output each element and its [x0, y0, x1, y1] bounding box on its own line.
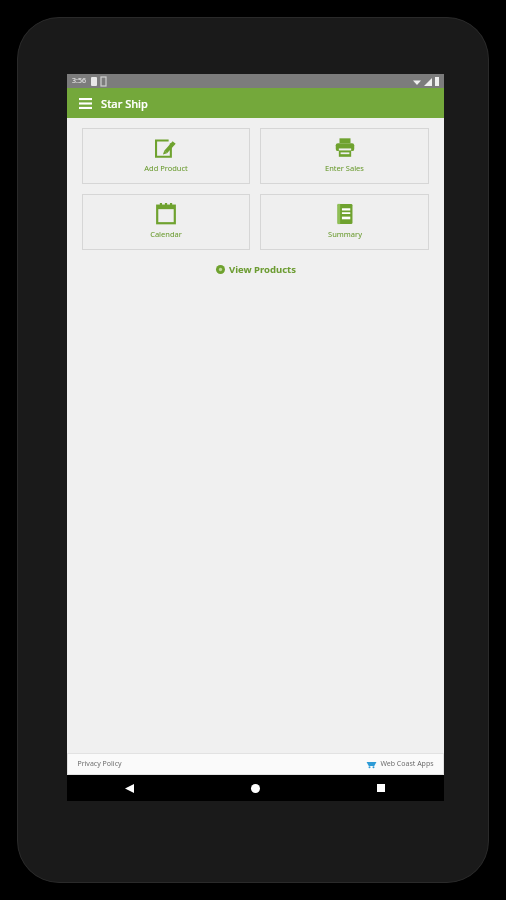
button[interactable]: Web Coast Apps — [366, 759, 434, 769]
button[interactable]: Home — [192, 775, 318, 801]
staticText: Enter Sales — [325, 163, 364, 173]
button[interactable]: Summary — [260, 194, 429, 250]
staticText: Privacy Policy — [77, 759, 122, 769]
button[interactable]: View Products — [210, 260, 302, 279]
staticText: 3:56 — [72, 76, 86, 86]
staticText: Star Ship — [101, 96, 148, 111]
button[interactable]: Calendar — [82, 194, 250, 250]
staticText: View Products — [229, 263, 296, 276]
button[interactable]: Recent apps — [318, 775, 444, 801]
staticText: Calendar — [150, 229, 182, 239]
button[interactable]: Open navigation menu — [75, 93, 95, 113]
button[interactable]: Privacy Policy — [77, 759, 122, 769]
staticText: Summary — [328, 229, 362, 239]
button[interactable]: Back — [67, 775, 192, 801]
staticText: Web Coast Apps — [380, 759, 434, 769]
button[interactable]: Add Product — [82, 128, 250, 184]
staticText: Add Product — [144, 163, 188, 173]
button[interactable]: Enter Sales — [260, 128, 429, 184]
